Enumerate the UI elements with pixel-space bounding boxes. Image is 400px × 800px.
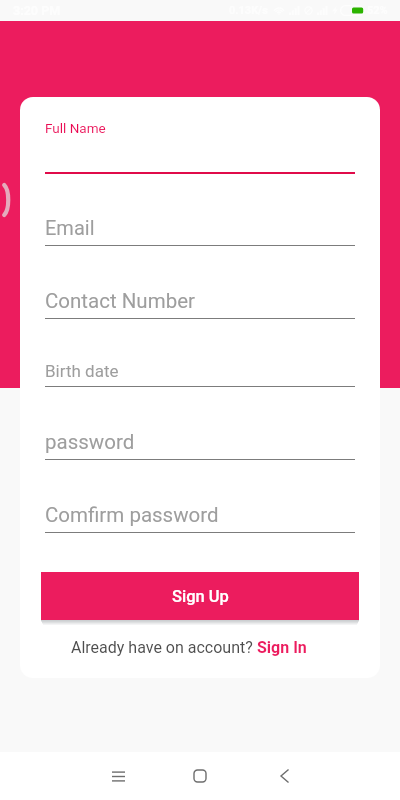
button[interactable]: password input	[45, 423, 355, 460]
button[interactable]: Sign In	[257, 638, 307, 657]
staticText: Full Name	[45, 120, 106, 136]
button[interactable]: Back	[260, 752, 308, 800]
button[interactable]: Full Name input	[45, 115, 355, 173]
button[interactable]: Contact Number input	[45, 282, 355, 319]
staticText: Birth date	[45, 361, 119, 381]
button[interactable]: Home	[176, 752, 224, 800]
button[interactable]: Sign Up	[41, 572, 359, 620]
button[interactable]: Birth date input	[45, 353, 355, 390]
staticText: Contact Number	[45, 289, 195, 313]
staticText: password	[45, 430, 135, 454]
button[interactable]: Recent apps	[94, 752, 142, 800]
button[interactable]: Comfirm password input	[45, 496, 355, 533]
staticText: Sign In	[257, 638, 307, 657]
staticText: Already have on account?	[71, 638, 257, 657]
staticText: Email	[45, 216, 95, 239]
button[interactable]: Email input	[45, 209, 355, 246]
staticText: Comfirm password	[45, 503, 219, 527]
staticText: Sign Up	[172, 587, 229, 606]
